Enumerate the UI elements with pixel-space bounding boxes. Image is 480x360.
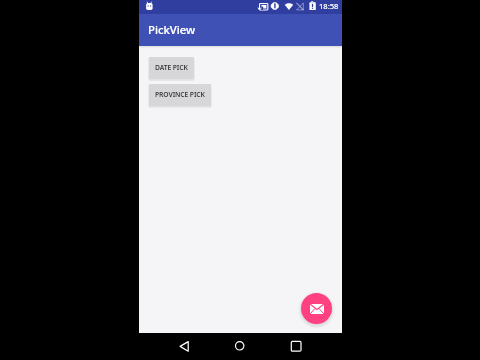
staticText: PROVINCE PICK [155,90,205,99]
button[interactable]: Back [179,338,201,354]
button[interactable]: Home [235,338,245,354]
staticText: DATE PICK [155,63,188,72]
button[interactable]: Compose email [301,293,332,324]
button[interactable]: DATE PICK [149,57,194,79]
button[interactable]: Recent apps [291,338,303,354]
staticText: PickView [148,22,196,37]
staticText: 18:58 [319,1,339,11]
button[interactable]: PROVINCE PICK [149,84,211,106]
